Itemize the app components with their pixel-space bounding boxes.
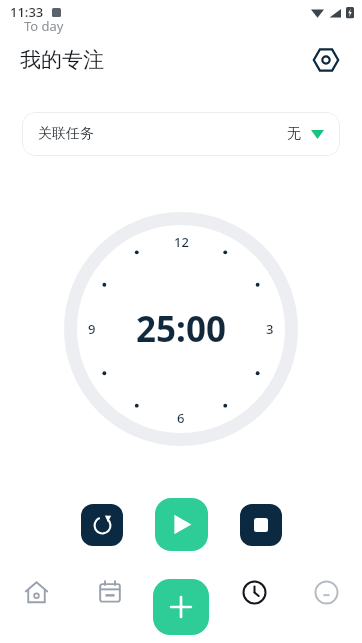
button[interactable]: Timer [218,563,290,621]
staticText: 我的专注 [20,47,104,73]
staticText: 无 [287,125,301,143]
button[interactable]: Settings [308,42,344,78]
staticText: 11:33 [10,3,44,21]
button[interactable]: Reset [81,504,123,546]
button[interactable]: Start [155,498,208,551]
button[interactable]: Profile [290,563,362,621]
button[interactable]: 关联任务 [22,112,340,156]
button[interactable]: Stop [240,504,282,546]
button[interactable]: Add [153,579,209,635]
staticText: 6 [177,409,185,427]
staticText: 关联任务 [38,125,94,143]
button[interactable]: Calendar [73,563,146,621]
staticText: 12 [174,233,189,251]
button[interactable]: Home [0,563,73,621]
staticText: To day [24,17,64,35]
staticText: 25:00 [136,305,226,353]
staticText: 9 [88,320,96,338]
staticText: 3 [266,320,274,338]
